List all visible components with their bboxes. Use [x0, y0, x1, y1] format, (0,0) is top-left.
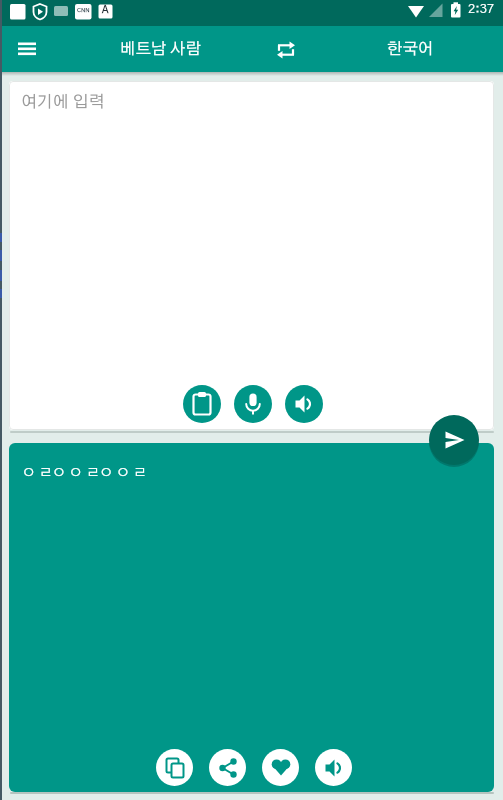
- staticText: CNN: [77, 7, 90, 13]
- button[interactable]: [270, 34, 302, 66]
- button[interactable]: [183, 385, 221, 423]
- button[interactable]: [285, 385, 323, 423]
- staticText: ㅇ ㄹㅇ ㅇ ㄹㅇ ㅇ ㄹ: [22, 466, 147, 480]
- staticText: 한국어: [387, 41, 434, 57]
- button[interactable]: [315, 749, 352, 786]
- button[interactable]: [262, 749, 299, 786]
- staticText: A: [102, 5, 109, 15]
- staticText: 여기에 입력: [21, 94, 105, 111]
- button[interactable]: [209, 749, 246, 786]
- staticText: 베트남 사람: [120, 41, 201, 57]
- button[interactable]: 베트남 사람: [95, 26, 225, 72]
- button[interactable]: [156, 749, 193, 786]
- button[interactable]: [12, 34, 42, 64]
- staticText: 2:37: [468, 3, 495, 16]
- button[interactable]: 한국어: [345, 26, 475, 72]
- button[interactable]: [234, 385, 272, 423]
- button[interactable]: [429, 415, 479, 465]
